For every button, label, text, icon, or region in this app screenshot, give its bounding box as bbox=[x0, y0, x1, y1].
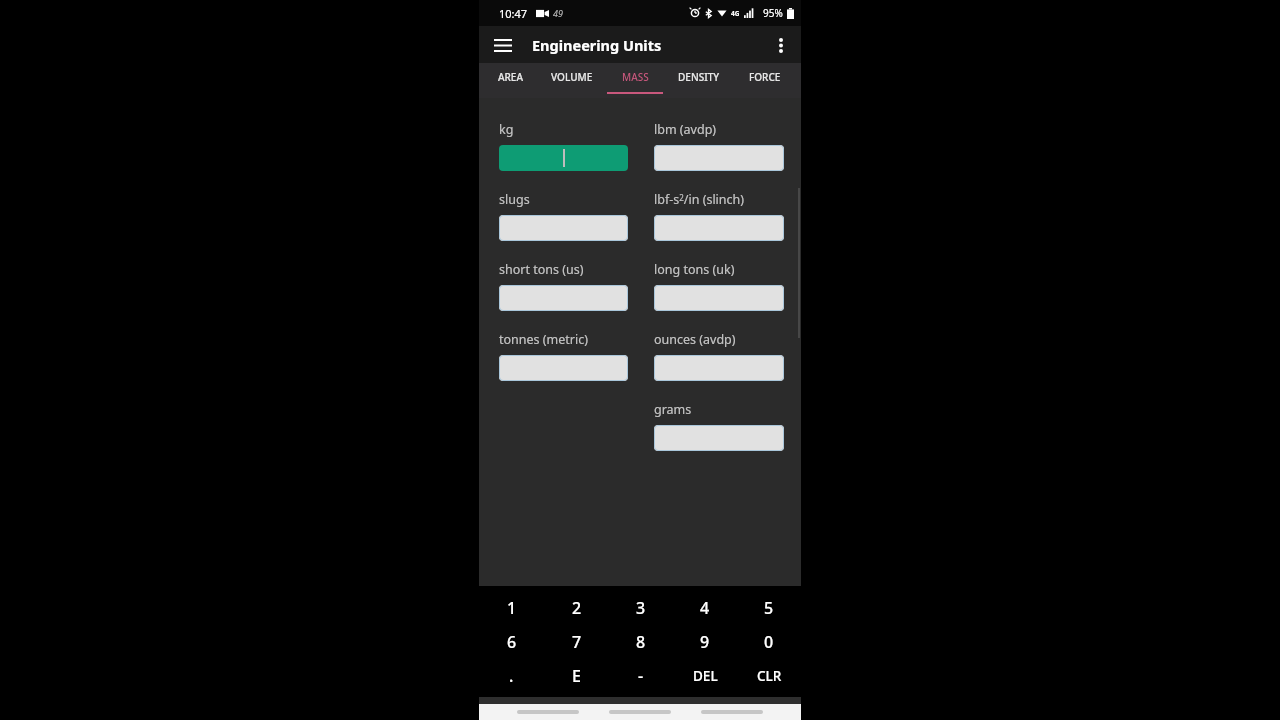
staticText: CLR bbox=[757, 667, 782, 685]
button[interactable]: 0 bbox=[737, 625, 801, 659]
button[interactable]: 3 bbox=[609, 591, 673, 625]
button[interactable]: short tons (us) input field bbox=[499, 285, 628, 311]
button[interactable]: ounces (avdp) input field bbox=[654, 355, 784, 381]
staticText: slugs bbox=[499, 191, 530, 208]
staticText: VOLUME bbox=[551, 70, 593, 84]
button[interactable]: 5 bbox=[737, 591, 801, 625]
button[interactable]: 9 bbox=[673, 625, 737, 659]
staticText: 3 bbox=[636, 597, 646, 619]
staticText: 1 bbox=[507, 597, 517, 619]
button[interactable]: grams input field bbox=[654, 425, 784, 451]
staticText: - bbox=[638, 665, 644, 687]
button[interactable]: DENSITY bbox=[664, 63, 733, 98]
button[interactable]: kg input field bbox=[499, 145, 628, 171]
button[interactable]: AREA bbox=[483, 63, 538, 98]
staticText: 9 bbox=[700, 631, 710, 653]
staticText: ounces (avdp) bbox=[654, 331, 736, 348]
staticText: DEL bbox=[693, 667, 718, 685]
button[interactable]: E bbox=[544, 659, 609, 693]
staticText: tonnes (metric) bbox=[499, 331, 588, 348]
staticText: 7 bbox=[572, 631, 582, 653]
staticText: 49 bbox=[553, 7, 563, 19]
staticText: 2 bbox=[572, 597, 582, 619]
staticText: 4 bbox=[700, 597, 710, 619]
staticText: E bbox=[572, 665, 581, 687]
staticText: DENSITY bbox=[678, 70, 720, 84]
staticText: lbf-s2/in (slinch) bbox=[654, 191, 745, 208]
button[interactable]: 4 bbox=[673, 591, 737, 625]
button[interactable]: slugs input field bbox=[499, 215, 628, 241]
button[interactable]: Back bbox=[701, 710, 763, 714]
staticText: FORCE bbox=[749, 70, 781, 84]
button[interactable]: lbf-s2/in (slinch) input field bbox=[654, 215, 784, 241]
button[interactable]: lbm (avdp) input field bbox=[654, 145, 784, 171]
button[interactable]: - bbox=[609, 659, 673, 693]
button[interactable]: Home bbox=[609, 710, 671, 714]
staticText: Engineering Units bbox=[532, 35, 662, 55]
button[interactable]: 1 bbox=[479, 591, 544, 625]
button[interactable]: tonnes (metric) input field bbox=[499, 355, 628, 381]
button[interactable]: MASS bbox=[606, 63, 664, 98]
staticText: lbm (avdp) bbox=[654, 121, 717, 138]
staticText: 8 bbox=[636, 631, 646, 653]
staticText: 95% bbox=[763, 6, 783, 20]
staticText: 5 bbox=[764, 597, 774, 619]
button[interactable]: FORCE bbox=[733, 63, 797, 98]
staticText: 0 bbox=[764, 631, 774, 653]
button[interactable]: More options bbox=[766, 30, 796, 60]
button[interactable]: Open navigation drawer bbox=[487, 29, 519, 61]
button[interactable]: . bbox=[479, 659, 544, 693]
staticText: 10:47 bbox=[499, 6, 528, 21]
button[interactable]: DEL bbox=[673, 659, 737, 693]
button[interactable]: long tons (uk) input field bbox=[654, 285, 784, 311]
staticText: grams bbox=[654, 401, 692, 418]
button[interactable]: CLR bbox=[737, 659, 801, 693]
staticText: short tons (us) bbox=[499, 261, 584, 278]
staticText: long tons (uk) bbox=[654, 261, 735, 278]
staticText: 6 bbox=[507, 631, 517, 653]
staticText: AREA bbox=[498, 70, 523, 84]
button[interactable]: 2 bbox=[544, 591, 609, 625]
button[interactable]: Recent apps bbox=[517, 710, 579, 714]
staticText: . bbox=[509, 665, 514, 687]
button[interactable]: 8 bbox=[609, 625, 673, 659]
button[interactable]: 7 bbox=[544, 625, 609, 659]
staticText: kg bbox=[499, 121, 514, 138]
button[interactable]: VOLUME bbox=[538, 63, 606, 98]
staticText: MASS bbox=[622, 70, 649, 84]
staticText: 4G bbox=[731, 9, 740, 18]
button[interactable]: 6 bbox=[479, 625, 544, 659]
